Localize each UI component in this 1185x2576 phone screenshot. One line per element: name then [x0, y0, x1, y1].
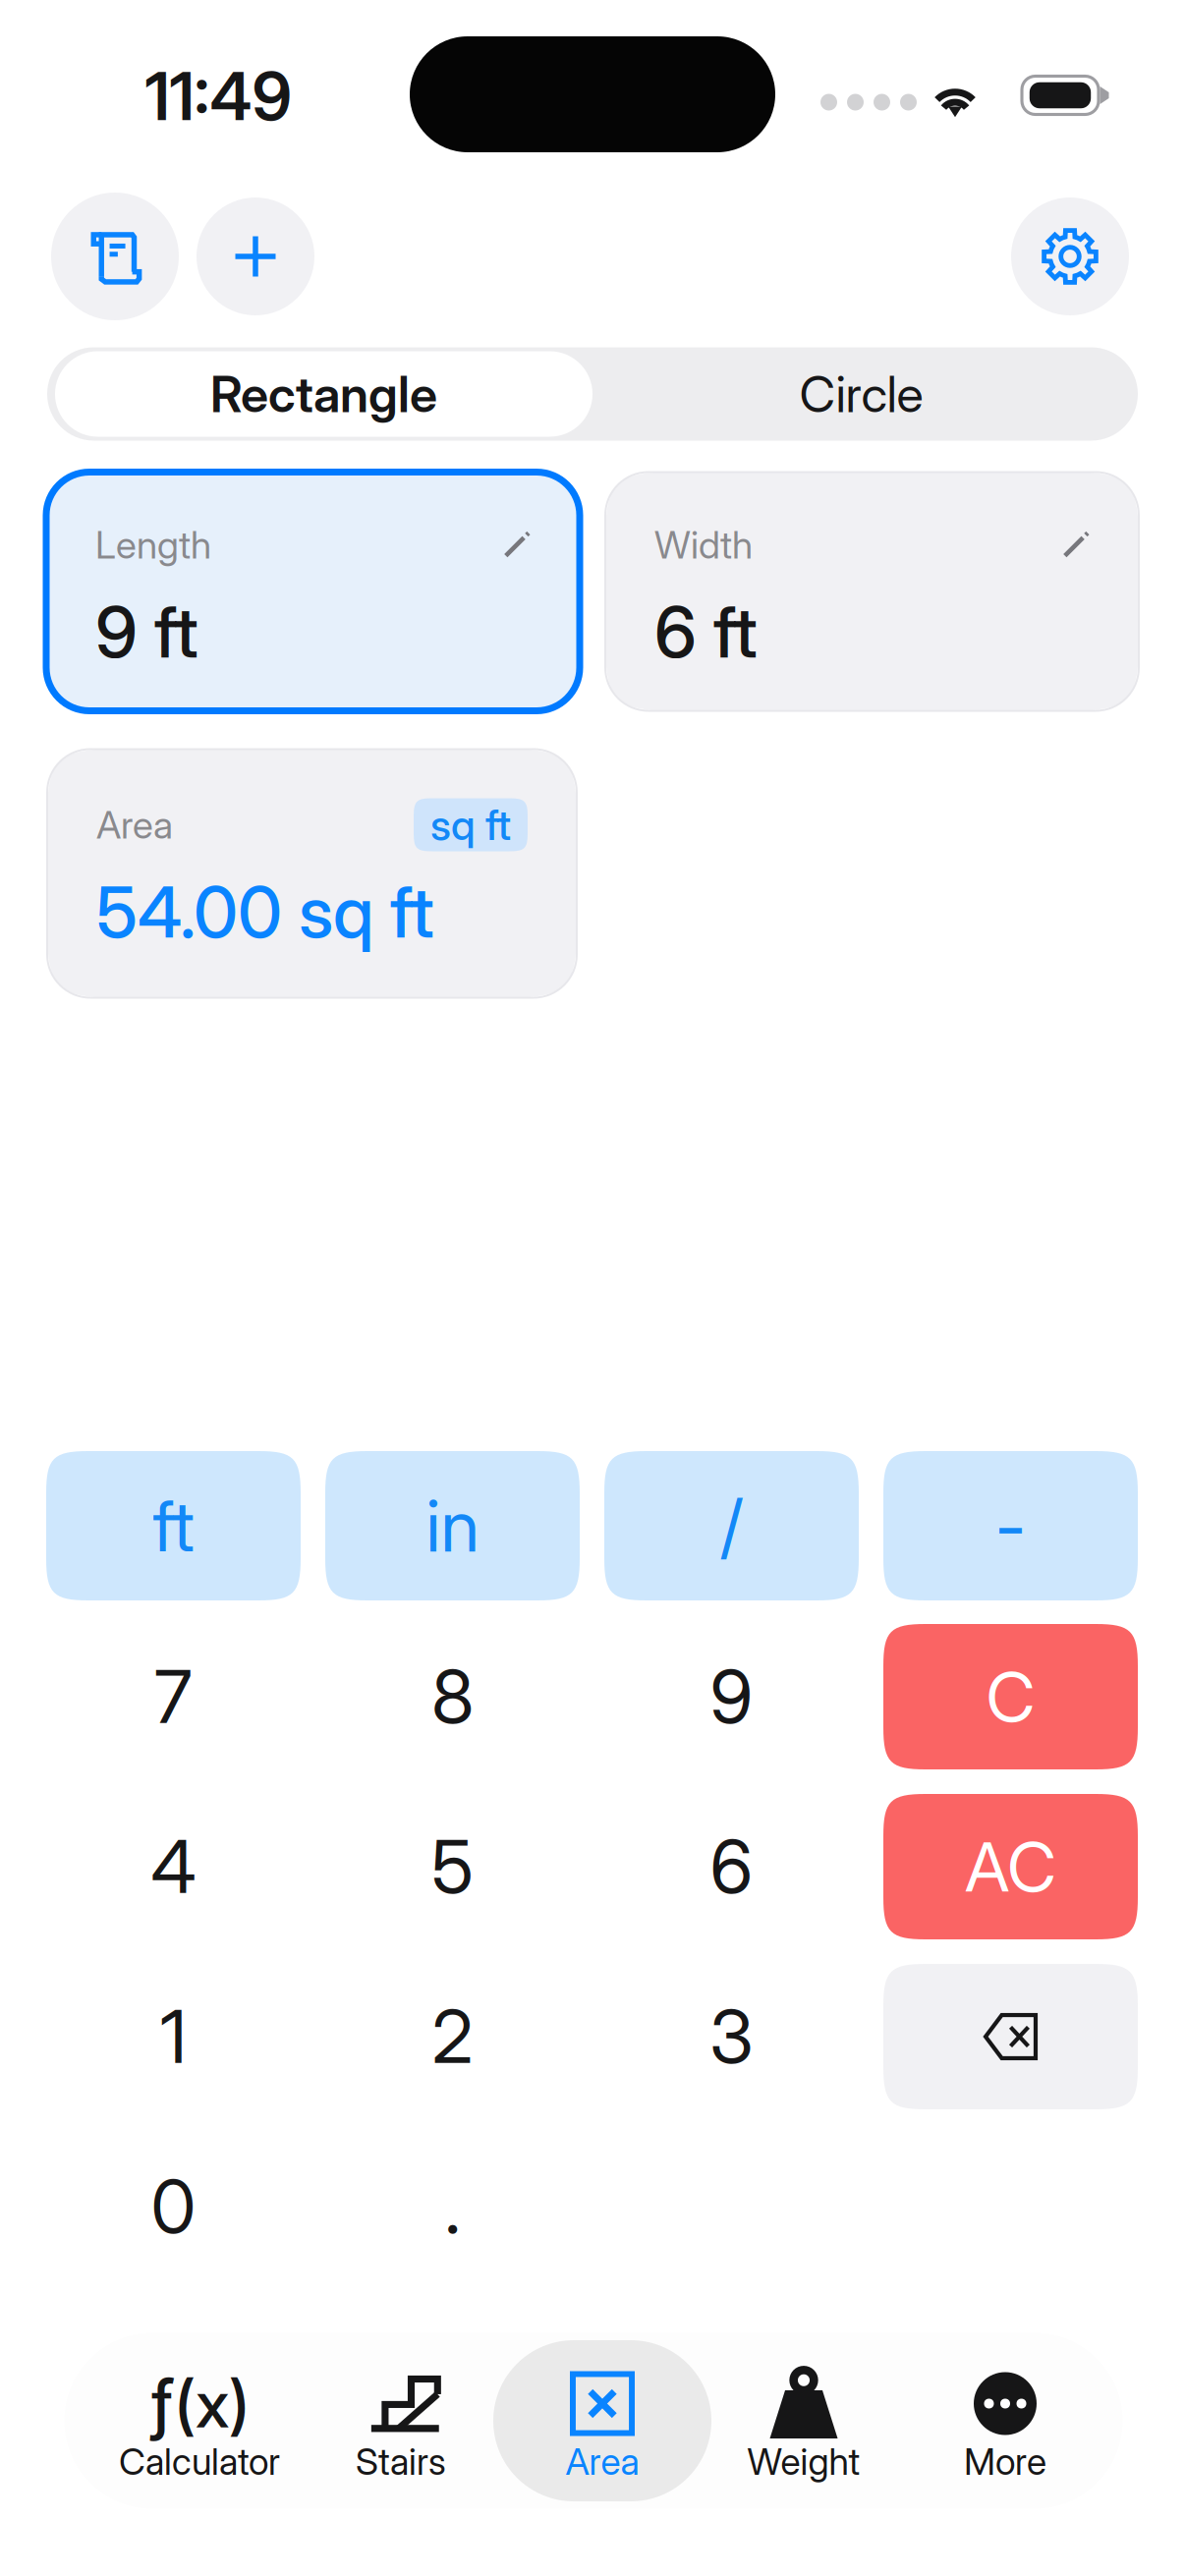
button[interactable]: Length: [46, 472, 580, 711]
button[interactable]: in: [325, 1451, 580, 1600]
button[interactable]: 9: [604, 1611, 859, 1781]
staticText: C: [986, 1656, 1035, 1738]
staticText: 7: [154, 1652, 193, 1741]
button[interactable]: Weight: [703, 2340, 904, 2501]
button[interactable]: Circle: [592, 351, 1130, 437]
button[interactable]: ƒ(x): [99, 2340, 300, 2501]
staticText: 6 ft: [654, 589, 758, 674]
staticText: ft: [153, 1483, 194, 1568]
staticText: Width: [654, 522, 753, 568]
button[interactable]: 2: [325, 1951, 580, 2121]
staticText: Length: [95, 522, 211, 568]
button[interactable]: AC: [883, 1794, 1138, 1939]
button[interactable]: 7: [46, 1611, 301, 1781]
staticText: Circle: [799, 364, 923, 424]
button[interactable]: Delete: [883, 1964, 1138, 2109]
button[interactable]: Settings: [1011, 197, 1129, 315]
staticText: Rectangle: [210, 364, 437, 424]
staticText: 0: [151, 2162, 196, 2250]
staticText: Area: [565, 2439, 639, 2484]
button[interactable]: -: [883, 1451, 1138, 1600]
button[interactable]: 4: [46, 1781, 301, 1951]
staticText: /: [720, 1483, 743, 1568]
staticText: 4: [151, 1822, 196, 1910]
staticText: 11:49: [145, 57, 291, 136]
staticText: sq ft: [430, 799, 511, 850]
staticText: Weight: [747, 2439, 860, 2484]
staticText: 9 ft: [95, 589, 198, 674]
staticText: Area: [96, 802, 173, 848]
button[interactable]: Rectangle: [55, 351, 592, 437]
button[interactable]: C: [883, 1624, 1138, 1769]
button[interactable]: 3: [604, 1951, 859, 2121]
button[interactable]: More: [904, 2340, 1106, 2501]
staticText: Calculator: [119, 2439, 280, 2484]
button[interactable]: Area: [502, 2340, 703, 2501]
staticText: 1: [160, 1992, 187, 2080]
staticText: 54.00 sq ft: [96, 869, 434, 955]
staticText: More: [964, 2439, 1046, 2484]
button[interactable]: 8: [325, 1611, 580, 1781]
staticText: 8: [431, 1652, 474, 1741]
button[interactable]: ft: [46, 1451, 301, 1600]
button[interactable]: 1: [46, 1951, 301, 2121]
staticText: AC: [965, 1826, 1056, 1908]
button[interactable]: /: [604, 1451, 859, 1600]
staticText: .: [445, 2162, 460, 2250]
button[interactable]: 5: [325, 1781, 580, 1951]
button[interactable]: .: [325, 2121, 580, 2291]
staticText: 2: [432, 1992, 473, 2080]
button[interactable]: 0: [46, 2121, 301, 2291]
staticText: -: [995, 1483, 1026, 1568]
button[interactable]: Add: [197, 197, 314, 315]
button[interactable]: Saved calculations: [51, 193, 179, 320]
button[interactable]: Stairs: [300, 2340, 502, 2501]
staticText: ƒ(x): [149, 2364, 250, 2443]
button[interactable]: Width: [605, 472, 1139, 711]
staticText: in: [426, 1483, 479, 1568]
staticText: 9: [710, 1652, 753, 1741]
staticText: 5: [431, 1822, 474, 1910]
staticText: 6: [710, 1822, 753, 1910]
button[interactable]: 6: [604, 1781, 859, 1951]
staticText: Stairs: [356, 2439, 446, 2484]
staticText: 3: [709, 1992, 754, 2080]
